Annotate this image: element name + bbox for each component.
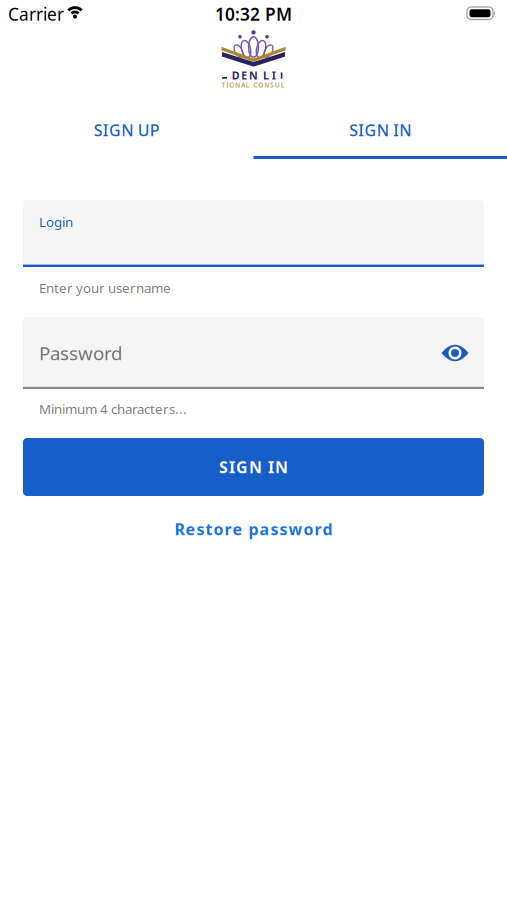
- button[interactable]: Restore password: [0, 517, 507, 541]
- staticText: N: [249, 68, 258, 83]
- staticText: Carrier: [8, 2, 64, 25]
- staticText: 10:32 PM: [215, 2, 292, 25]
- staticText: Password: [39, 341, 122, 365]
- staticText: I: [272, 68, 276, 83]
- button[interactable]: SIGN IN: [23, 438, 484, 496]
- staticText: SIGN UP: [94, 119, 160, 141]
- staticText: Minimum 4 characters...: [39, 400, 187, 418]
- staticText: D: [232, 68, 240, 83]
- staticText: SIGN IN: [219, 456, 288, 478]
- staticText: Restore password: [174, 518, 332, 540]
- button[interactable]: SIGN UP: [0, 106, 253, 154]
- staticText: Login: [39, 213, 73, 231]
- staticText: SIGN IN: [349, 119, 411, 141]
- staticText: TIONAL CONSUL: [221, 80, 285, 89]
- staticText: L: [263, 68, 269, 83]
- staticText: E: [241, 68, 247, 83]
- button[interactable]: SIGN IN: [253, 106, 507, 154]
- button[interactable]: Show password: [431, 329, 479, 377]
- staticText: Enter your username: [39, 279, 171, 297]
